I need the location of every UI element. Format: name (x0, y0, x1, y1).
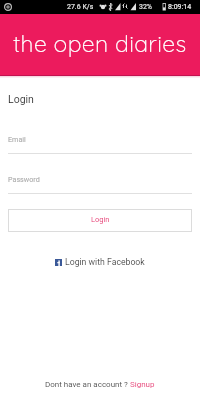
staticText: 8:09:14 (168, 3, 192, 11)
staticText: 27.6 K/s (67, 3, 94, 11)
button[interactable]: Login with Facebook (0, 257, 200, 267)
staticText: Login with Facebook (65, 257, 145, 267)
staticText: the open diaries (13, 29, 187, 58)
staticText: Password (8, 175, 40, 183)
staticText: Email (8, 135, 26, 143)
staticText: 32% (139, 3, 152, 11)
button[interactable]: Signup (130, 380, 155, 389)
staticText: Dont have an account ? (45, 380, 130, 389)
button[interactable]: Login (8, 209, 192, 232)
staticText: Login (8, 93, 34, 105)
staticText: Login (91, 215, 110, 224)
